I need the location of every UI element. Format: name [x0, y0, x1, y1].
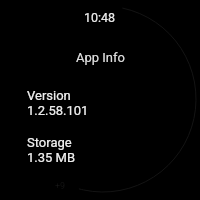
staticText: App Info [76, 50, 125, 65]
staticText: +9 [55, 181, 66, 192]
button[interactable]: Version [0, 88, 200, 118]
staticText: 1.35 MB [27, 150, 76, 165]
staticText: 1.2.58.101 [27, 103, 89, 118]
staticText: Version [27, 88, 71, 103]
staticText: 10:48 [84, 10, 116, 25]
button[interactable]: App Info [0, 50, 200, 65]
staticText: Storage [27, 135, 72, 150]
button[interactable]: Storage [0, 135, 200, 165]
